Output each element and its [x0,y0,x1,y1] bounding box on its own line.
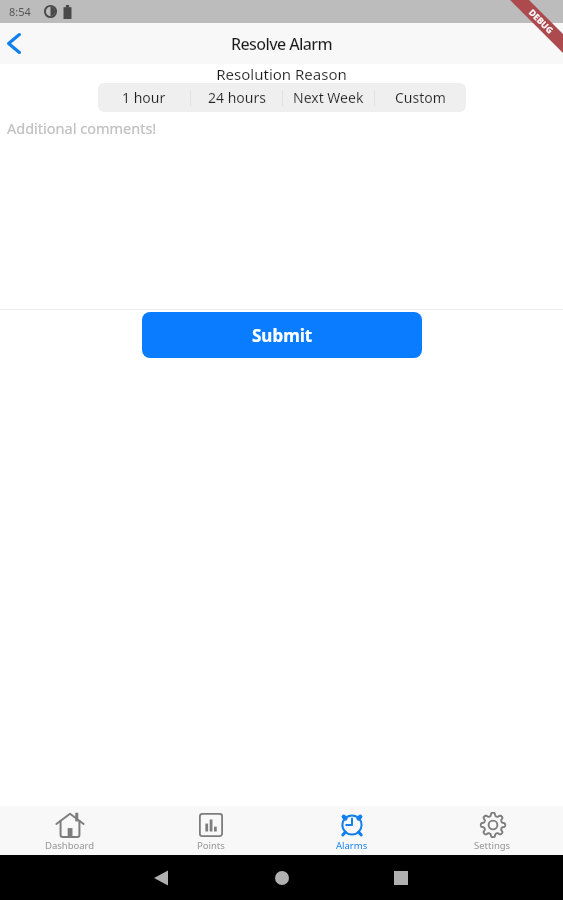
staticText: 8:54 [9,4,31,19]
staticText: Resolution Reason [0,64,563,82]
staticText: Dashboard [45,839,95,852]
staticText: Submit [252,324,313,347]
button[interactable]: Back [0,23,36,64]
button[interactable]: Back [137,855,185,900]
staticText: Alarms [336,839,368,852]
staticText: 24 hours [208,88,266,107]
staticText: Additional comments! [7,118,157,138]
staticText: 1 hour [122,88,166,107]
staticText: Resolve Alarm [231,33,333,55]
button[interactable]: Dashboard [0,806,140,855]
staticText: Settings [474,839,511,852]
button[interactable]: 1 hour [98,83,190,112]
staticText: Next Week [293,88,364,107]
staticText: Points [197,839,225,852]
button[interactable]: 24 hours [191,83,282,112]
button[interactable]: Points [140,806,281,855]
staticText: Custom [395,88,446,107]
button[interactable]: Alarms [281,806,422,855]
button[interactable]: Next Week [283,83,374,112]
button[interactable]: Home [258,855,306,900]
button[interactable]: Submit [142,312,422,358]
button[interactable]: Settings [422,806,563,855]
button[interactable]: Custom [375,83,466,112]
button[interactable]: Recent apps [377,855,425,900]
